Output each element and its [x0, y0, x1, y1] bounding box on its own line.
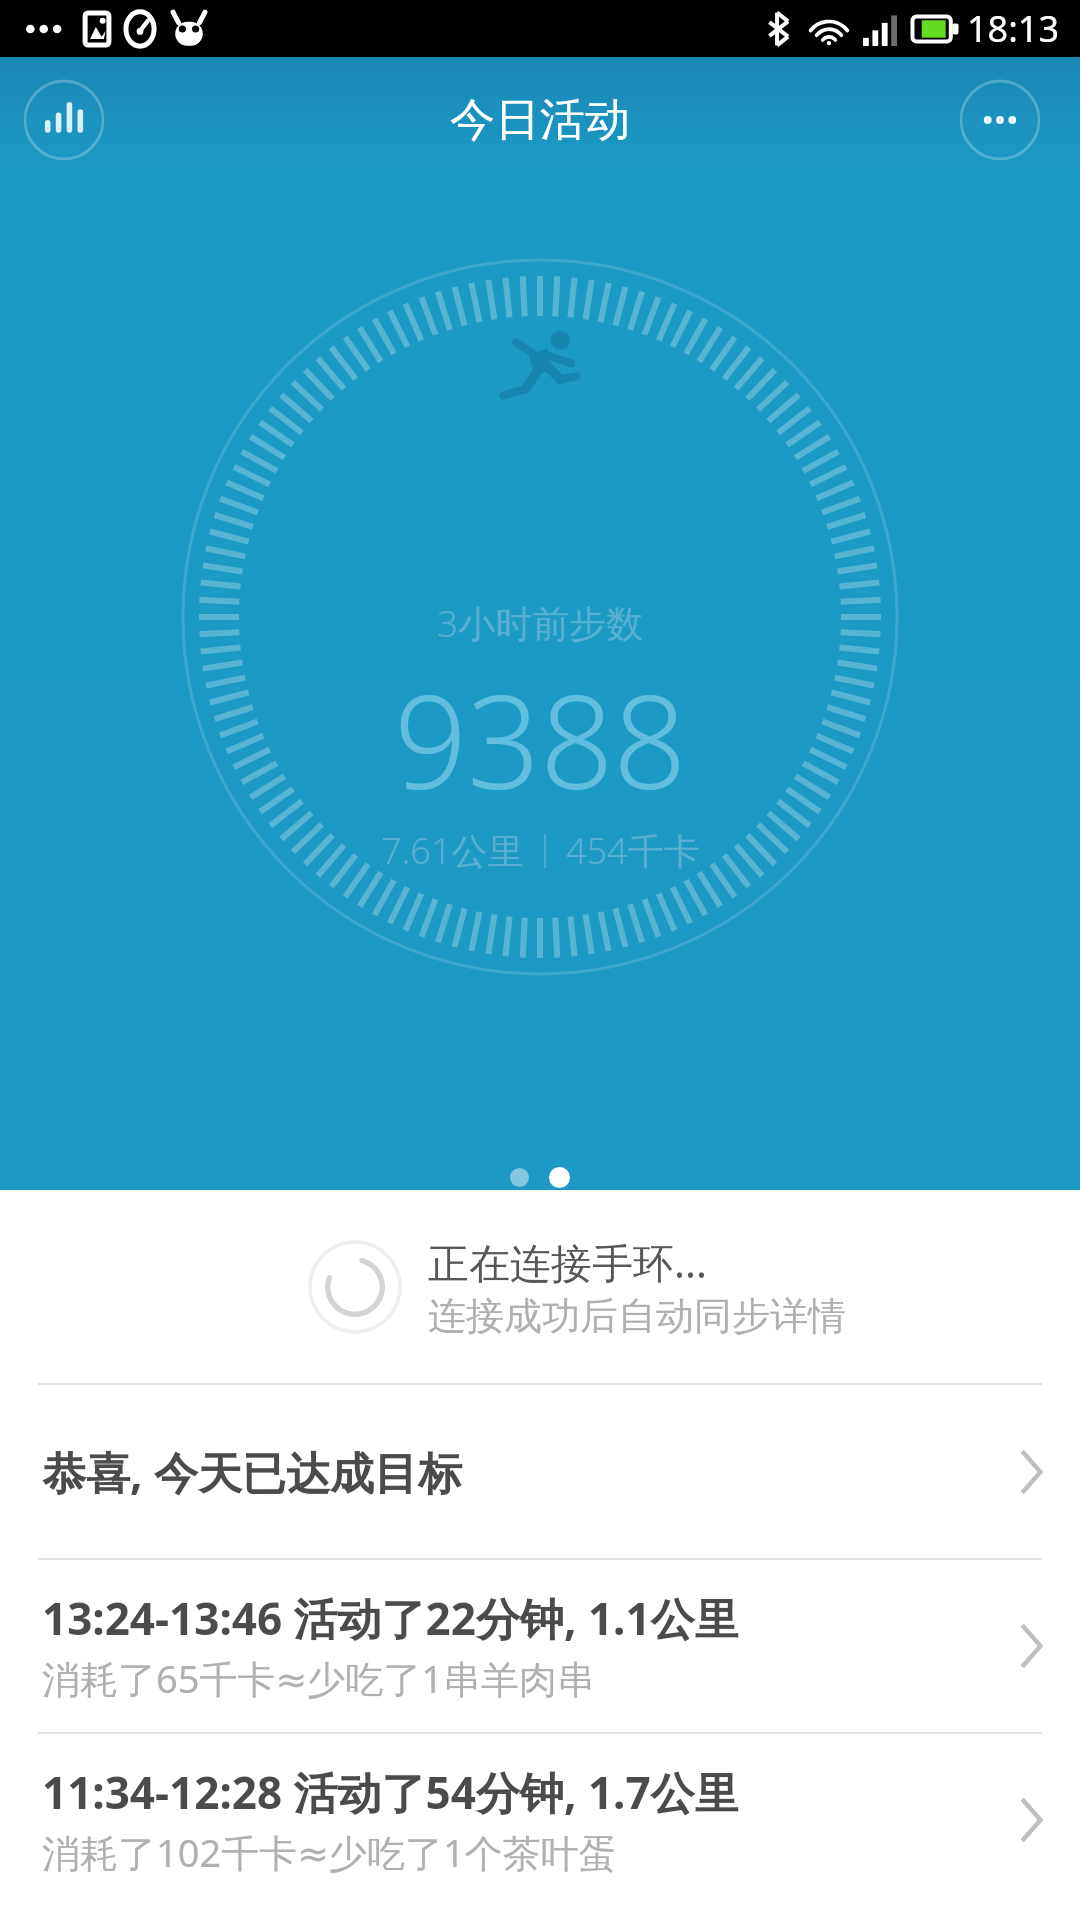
staticText: 消耗了65千卡≈少吃了1串羊肉串 — [42, 1652, 596, 1704]
staticText: 恭喜, 今天已达成目标 — [42, 1442, 1014, 1502]
staticText: 消耗了102千卡≈少吃了1个茶叶蛋 — [42, 1826, 617, 1878]
button[interactable]: 11:34-12:28 活动了54分钟, 1.7公里 — [0, 1734, 1080, 1906]
button[interactable]: 恭喜, 今天已达成目标 — [0, 1385, 1080, 1558]
staticText: 3小时前步数 — [437, 597, 644, 648]
staticText: 连接成功后自动同步详情 — [428, 1292, 846, 1340]
button[interactable]: Statistics — [23, 79, 105, 161]
button[interactable]: 13:24-13:46 活动了22分钟, 1.1公里 — [0, 1560, 1080, 1732]
button[interactable]: 正在连接手环... — [0, 1190, 1080, 1383]
staticText: 13:24-13:46 活动了22分钟, 1.1公里 — [42, 1588, 739, 1648]
staticText: 今日活动 — [450, 92, 630, 149]
staticText: 11:34-12:28 活动了54分钟, 1.7公里 — [42, 1762, 739, 1822]
staticText: 正在连接手环... — [428, 1234, 707, 1290]
staticText: 454千卡 — [566, 826, 700, 875]
staticText: 9388 — [394, 652, 687, 826]
button[interactable]: More options — [959, 79, 1041, 161]
staticText: 18:13 — [967, 4, 1060, 53]
staticText: 7.61公里 — [381, 826, 524, 875]
